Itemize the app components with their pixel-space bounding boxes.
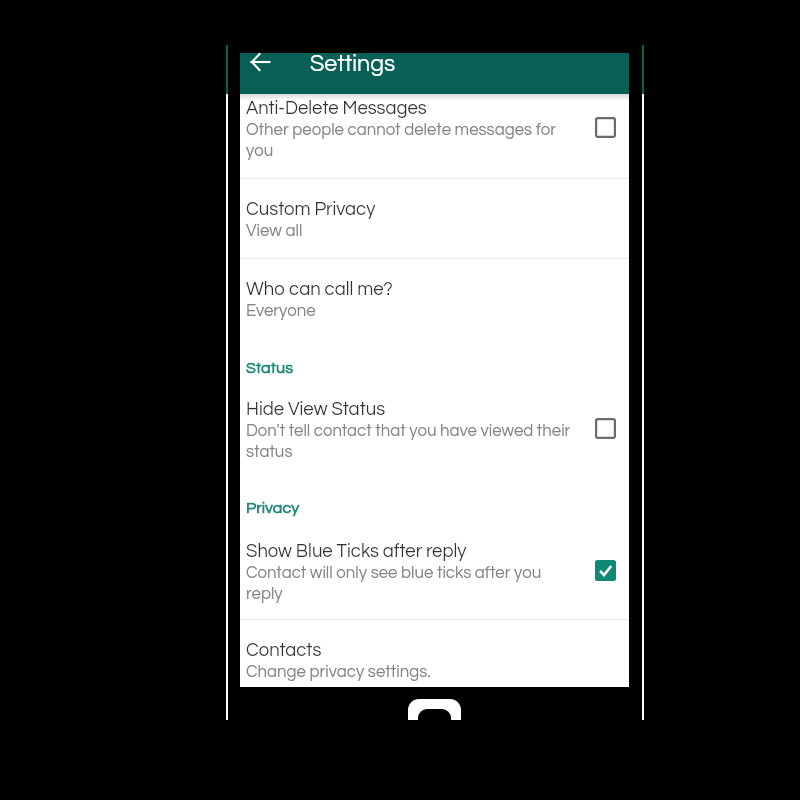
staticText: Anti-Delete Messages xyxy=(246,96,427,118)
staticText: Hide View Status xyxy=(246,397,386,419)
staticText: Contacts xyxy=(246,638,322,660)
staticText: Show Blue Ticks after reply xyxy=(246,539,467,561)
staticText: Everyone xyxy=(246,299,316,320)
staticText: Don't tell contact that you have viewed … xyxy=(246,419,575,461)
button[interactable]: Back xyxy=(240,43,280,80)
staticText: Change privacy settings. xyxy=(246,660,431,681)
button[interactable]: Hide View Status xyxy=(240,389,629,479)
button[interactable]: Anti-Delete Messages xyxy=(240,94,629,179)
button[interactable]: Who can call me? xyxy=(240,259,629,334)
staticText: Who can call me? xyxy=(246,277,393,299)
button[interactable]: Custom Privacy xyxy=(240,179,629,259)
staticText: Other people cannot delete messages for … xyxy=(246,118,575,160)
staticText: Custom Privacy xyxy=(246,197,376,219)
staticText: Settings xyxy=(310,50,396,76)
staticText: Contact will only see blue ticks after y… xyxy=(246,561,575,603)
staticText: Status xyxy=(246,358,293,377)
button[interactable]: Show Blue Ticks after reply xyxy=(240,531,629,620)
staticText: Privacy xyxy=(246,498,300,517)
button[interactable]: Contacts xyxy=(240,620,629,687)
staticText: View all xyxy=(246,219,303,240)
